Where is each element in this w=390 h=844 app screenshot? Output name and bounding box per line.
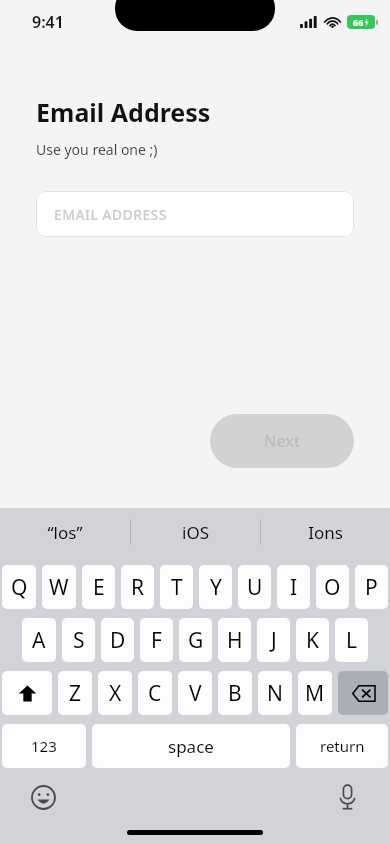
button[interactable]: E	[82, 565, 115, 609]
button[interactable]: Ions	[261, 508, 390, 556]
staticText: A	[32, 626, 46, 655]
staticText: B	[228, 679, 242, 708]
button[interactable]: T	[160, 565, 193, 609]
button[interactable]: O	[316, 565, 349, 609]
button[interactable]: K	[296, 618, 329, 662]
staticText: 66	[353, 16, 364, 28]
button[interactable]: iOS	[131, 508, 260, 556]
staticText: Q	[11, 573, 28, 602]
button[interactable]: EMAIL ADDRESS	[36, 191, 354, 237]
staticText: U	[247, 573, 263, 602]
button[interactable]: Z	[58, 671, 92, 715]
staticText: Use you real one ;)	[36, 140, 158, 159]
button[interactable]: S	[62, 618, 95, 662]
staticText: “los”	[47, 521, 83, 544]
staticText: O	[324, 573, 341, 602]
staticText: Y	[210, 573, 222, 602]
staticText: E	[93, 573, 105, 602]
staticText: Ions	[308, 521, 343, 544]
staticText: W	[49, 573, 69, 602]
staticText: Next	[264, 430, 301, 452]
staticText: X	[109, 679, 122, 708]
staticText: N	[267, 679, 283, 708]
button[interactable]: P	[355, 565, 388, 609]
staticText: D	[110, 626, 126, 655]
staticText: J	[271, 626, 277, 655]
button[interactable]: F	[140, 618, 173, 662]
button[interactable]: A	[22, 618, 56, 662]
staticText: F	[151, 626, 162, 655]
staticText: 123	[31, 736, 57, 756]
button[interactable]: Q	[2, 565, 36, 609]
button[interactable]: Backspace	[338, 671, 388, 715]
staticText: EMAIL ADDRESS	[54, 205, 167, 224]
staticText: L	[346, 626, 358, 655]
button[interactable]: M	[298, 671, 332, 715]
button[interactable]: J	[257, 618, 290, 662]
staticText: R	[131, 573, 145, 602]
staticText: G	[188, 626, 204, 655]
button[interactable]: Y	[199, 565, 232, 609]
staticText: K	[306, 626, 319, 655]
button[interactable]: space	[92, 724, 290, 768]
button[interactable]: I	[277, 565, 310, 609]
button[interactable]: Emoji	[26, 780, 60, 814]
staticText: I	[290, 573, 298, 602]
staticText: T	[171, 573, 183, 602]
button[interactable]: B	[218, 671, 252, 715]
staticText: H	[227, 626, 243, 655]
button[interactable]: H	[218, 618, 251, 662]
staticText: C	[148, 679, 162, 708]
staticText: space	[168, 735, 214, 758]
staticText: 9:41	[32, 11, 64, 33]
button[interactable]: 123	[2, 724, 86, 768]
staticText: Email Address	[36, 95, 211, 129]
staticText: S	[73, 626, 85, 655]
staticText: M	[305, 679, 325, 708]
staticText: Z	[69, 679, 82, 708]
button[interactable]: U	[238, 565, 271, 609]
button[interactable]: C	[138, 671, 172, 715]
staticText: iOS	[182, 521, 209, 544]
button[interactable]: “los”	[0, 508, 130, 556]
button[interactable]: V	[178, 671, 212, 715]
button[interactable]: G	[179, 618, 212, 662]
button[interactable]: Shift	[2, 671, 52, 715]
staticText: V	[189, 679, 202, 708]
button[interactable]: Next	[210, 414, 354, 468]
button[interactable]: R	[121, 565, 154, 609]
button[interactable]: N	[258, 671, 292, 715]
staticText: P	[365, 573, 378, 602]
button[interactable]: W	[42, 565, 76, 609]
staticText: return	[320, 736, 365, 756]
button[interactable]: return	[296, 724, 388, 768]
button[interactable]: Dictation	[330, 780, 364, 814]
button[interactable]: D	[101, 618, 134, 662]
button[interactable]: L	[335, 618, 368, 662]
button[interactable]: X	[98, 671, 132, 715]
